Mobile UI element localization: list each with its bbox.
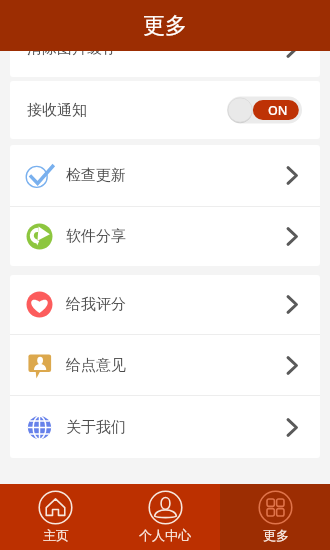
button[interactable]: 检查更新 — [10, 145, 320, 206]
staticText: ON — [268, 102, 288, 119]
staticText: 更多 — [263, 527, 289, 543]
button[interactable]: More — [220, 484, 330, 550]
button[interactable]: Profile — [110, 484, 220, 550]
staticText: 软件分享 — [66, 227, 126, 246]
button[interactable]: 接收通知 — [10, 81, 320, 139]
button[interactable]: 关于我们 — [10, 396, 320, 458]
staticText: 给点意见 — [66, 356, 126, 375]
staticText: 给我评分 — [66, 295, 126, 314]
staticText: 清除图片缓存 — [27, 51, 117, 58]
staticText: 主页 — [43, 527, 69, 543]
staticText: 个人中心 — [139, 527, 191, 543]
staticText: 关于我们 — [66, 418, 126, 437]
button[interactable]: Home — [0, 484, 110, 550]
staticText: 检查更新 — [66, 166, 126, 185]
button[interactable]: 软件分享 — [10, 207, 320, 266]
button[interactable]: 给我评分 — [10, 275, 320, 334]
button[interactable]: 清除图片缓存 — [10, 51, 320, 77]
button[interactable]: 给点意见 — [10, 335, 320, 395]
staticText: 接收通知 — [27, 101, 87, 120]
staticText: 更多 — [143, 12, 187, 40]
